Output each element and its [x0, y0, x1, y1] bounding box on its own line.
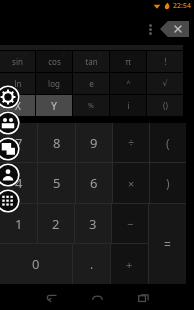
- button[interactable]: i: [110, 95, 146, 116]
- staticText: sin: [12, 56, 23, 67]
- button[interactable]: Apps: [0, 189, 20, 213]
- staticText: (: [166, 135, 170, 151]
- staticText: √: [162, 79, 168, 88]
- button[interactable]: 7: [0, 123, 37, 162]
- button[interactable]: Recents: [132, 286, 154, 308]
- button[interactable]: Y: [36, 95, 72, 116]
- button[interactable]: Messages: [0, 137, 20, 161]
- staticText: 22:54: [173, 1, 191, 11]
- button[interactable]: 0: [0, 244, 72, 284]
- staticText: 4: [15, 174, 23, 192]
- button[interactable]: log: [36, 73, 72, 94]
- button[interactable]: 6: [76, 163, 112, 203]
- staticText: 9: [90, 134, 98, 152]
- button[interactable]: Profile: [0, 163, 20, 187]
- button[interactable]: Contacts: [0, 111, 20, 135]
- button[interactable]: =: [149, 204, 186, 284]
- staticText: (): [163, 100, 168, 111]
- staticText: log: [48, 78, 60, 89]
- button[interactable]: (): [147, 95, 183, 116]
- staticText: 8: [53, 134, 61, 152]
- button[interactable]: 9: [76, 123, 112, 162]
- staticText: ln: [14, 78, 22, 89]
- button[interactable]: !: [147, 51, 183, 72]
- button[interactable]: cos: [36, 51, 72, 72]
- staticText: ^: [126, 79, 131, 89]
- staticText: 0: [32, 255, 40, 273]
- button[interactable]: 4: [0, 163, 37, 203]
- button[interactable]: ln: [0, 73, 35, 94]
- button[interactable]: .: [73, 244, 110, 284]
- button[interactable]: ): [150, 163, 186, 203]
- button[interactable]: √: [147, 73, 183, 94]
- button[interactable]: Home: [86, 286, 108, 308]
- staticText: −: [127, 216, 134, 231]
- staticText: 2: [52, 215, 60, 233]
- button[interactable]: +: [111, 244, 148, 284]
- staticText: 6: [90, 174, 98, 192]
- staticText: +: [126, 257, 133, 272]
- button[interactable]: 8: [38, 123, 75, 162]
- staticText: !: [164, 56, 167, 67]
- button[interactable]: 3: [75, 204, 111, 243]
- button[interactable]: sin: [0, 51, 35, 72]
- button[interactable]: 1: [0, 204, 37, 243]
- button[interactable]: 2: [38, 204, 74, 243]
- staticText: e: [89, 78, 94, 89]
- button[interactable]: π: [110, 51, 146, 72]
- button[interactable]: Delete: [160, 21, 189, 37]
- button[interactable]: Back: [40, 286, 62, 308]
- staticText: X: [15, 99, 21, 113]
- button[interactable]: −: [112, 204, 148, 243]
- staticText: .: [90, 256, 94, 272]
- button[interactable]: ÷: [113, 123, 149, 162]
- button[interactable]: (: [150, 123, 186, 162]
- staticText: 3: [89, 215, 97, 233]
- staticText: ): [166, 175, 170, 191]
- staticText: 7: [15, 134, 23, 152]
- staticText: %: [88, 101, 94, 111]
- button[interactable]: Settings: [0, 85, 20, 109]
- staticText: 1: [15, 215, 23, 233]
- staticText: Y: [51, 99, 57, 113]
- button[interactable]: %: [73, 95, 109, 116]
- button[interactable]: X: [0, 95, 35, 116]
- button[interactable]: ×: [113, 163, 149, 203]
- button[interactable]: More options: [143, 19, 157, 39]
- staticText: 5: [53, 174, 61, 192]
- staticText: i: [127, 100, 130, 111]
- staticText: ÷: [128, 135, 135, 150]
- button[interactable]: e: [73, 73, 109, 94]
- button[interactable]: ^: [110, 73, 146, 94]
- staticText: ×: [128, 176, 135, 191]
- staticText: =: [164, 236, 171, 252]
- staticText: π: [125, 56, 131, 67]
- staticText: cos: [48, 56, 61, 67]
- button[interactable]: tan: [73, 51, 109, 72]
- button[interactable]: 5: [38, 163, 75, 203]
- staticText: tan: [85, 56, 98, 67]
